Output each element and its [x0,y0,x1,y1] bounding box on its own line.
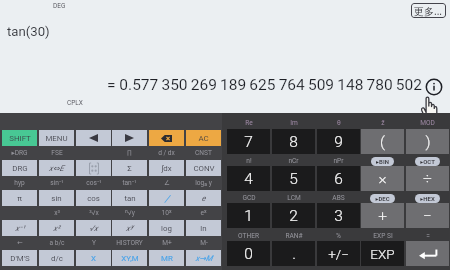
button[interactable]: AC [186,130,221,146]
button[interactable]: × [361,166,404,191]
staticText: ∫dx [161,164,172,173]
staticText: ▸HEX [420,195,435,202]
staticText: 7 [244,133,253,151]
button[interactable]: √x [76,220,111,236]
button[interactable]: 1 [227,203,270,228]
button[interactable]: SHIFT [2,130,37,146]
button[interactable]: Right [112,130,147,146]
staticText: hyp [14,179,25,187]
staticText: CONV [193,164,215,173]
button[interactable]: XY,M [112,250,147,266]
button[interactable]: ∫dx [149,160,184,176]
button[interactable]: x⁻¹ [2,220,37,236]
staticText: Re [245,119,253,127]
button[interactable]: 更多... [411,3,446,18]
staticText: DRG [12,164,28,173]
staticText: ▸OCT [420,158,435,165]
button[interactable]: ) [406,129,449,154]
staticText: 3 [334,207,343,225]
button[interactable]: 2 [272,203,315,228]
button[interactable]: 0 [227,241,270,266]
staticText: = 0.577 350 269 189 625 764 509 148 780 … [107,76,422,94]
staticText: M- [200,239,208,247]
button[interactable]: 6 [317,166,360,191]
staticText: MENU [45,134,68,143]
staticText: 0 [244,245,253,263]
button[interactable]: Backspace [149,130,184,146]
button[interactable]: Left [76,130,111,146]
button[interactable]: e [186,190,221,206]
staticText: / [165,193,169,204]
staticText: + [378,207,387,225]
button[interactable]: tan [112,190,147,206]
button[interactable]: π [2,190,37,206]
button[interactable]: Matrix [76,160,111,176]
button[interactable]: x² [39,220,74,236]
button[interactable]: D'M'S [2,250,37,266]
staticText: ∠ [164,179,170,187]
button[interactable]: DRG [2,160,37,176]
staticText: x³ [54,209,60,217]
other: Backspace [161,135,172,142]
staticText: RAN# [285,232,303,240]
button[interactable]: − [406,203,449,228]
button[interactable]: Σ [112,160,147,176]
staticText: 6 [334,170,343,188]
staticText: 8 [289,133,298,151]
button[interactable]: ln [186,220,221,236]
button[interactable]: 8 [272,129,315,154]
staticText: X [91,254,96,263]
button[interactable]: EXP [361,241,404,266]
staticText: d/c [51,254,63,263]
button[interactable]: CONV [186,160,221,176]
button[interactable]: Enter [406,241,449,266]
button[interactable]: Info [425,78,443,96]
button[interactable]: X [76,250,111,266]
button[interactable]: / [149,190,184,206]
button[interactable]: x→M [186,250,221,266]
button[interactable]: MENU [39,130,74,146]
other: Matrix [87,163,101,174]
button[interactable]: 5 [272,166,315,191]
staticText: CPLX [67,99,83,107]
button[interactable]: x⇔E [39,160,74,176]
staticText: e [201,194,206,203]
staticText: CNST [195,149,212,157]
staticText: 2 [289,207,298,225]
staticText: cos⁻¹ [86,179,102,187]
staticText: tan [124,194,136,203]
staticText: cos [87,194,100,203]
button[interactable]: 4 [227,166,270,191]
button[interactable]: sin [39,190,74,206]
button[interactable]: MR [149,250,184,266]
staticText: xʸ [126,224,133,233]
staticText: ▸DEC [375,195,390,202]
button[interactable]: + [361,203,404,228]
button[interactable]: +/− [317,241,360,266]
button[interactable]: ( [361,129,404,154]
staticText: ⁿ√y [125,209,135,217]
button[interactable]: d/c [39,250,74,266]
staticText: Y [92,239,96,247]
button[interactable]: 9 [317,129,360,154]
staticText: sin [51,194,62,203]
button[interactable]: log [149,220,184,236]
button[interactable]: . [272,241,315,266]
staticText: nPr [333,157,344,165]
staticText: a b/c [49,239,65,247]
button[interactable]: 3 [317,203,360,228]
staticText: EXP SI [373,232,393,240]
staticText: MR [161,254,173,263]
staticText: ln [200,224,207,233]
staticText: sin⁻¹ [50,179,64,187]
staticText: M+ [162,239,172,247]
staticText: × [378,170,387,188]
staticText: tan⁻¹ [122,179,137,187]
staticText: D'M'S [10,254,30,263]
staticText: % [336,232,341,240]
staticText: XY,M [121,254,139,263]
button[interactable]: 7 [227,129,270,154]
button[interactable]: xʸ [112,220,147,236]
button[interactable]: ÷ [406,166,449,191]
button[interactable]: cos [76,190,111,206]
